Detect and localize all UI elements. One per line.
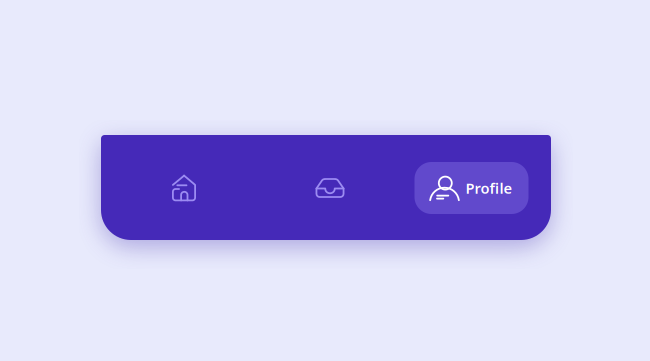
button[interactable]: Home — [142, 146, 226, 230]
staticText: Profile — [465, 178, 512, 198]
button[interactable]: Inbox — [288, 146, 372, 230]
button[interactable]: Profile — [414, 162, 528, 214]
